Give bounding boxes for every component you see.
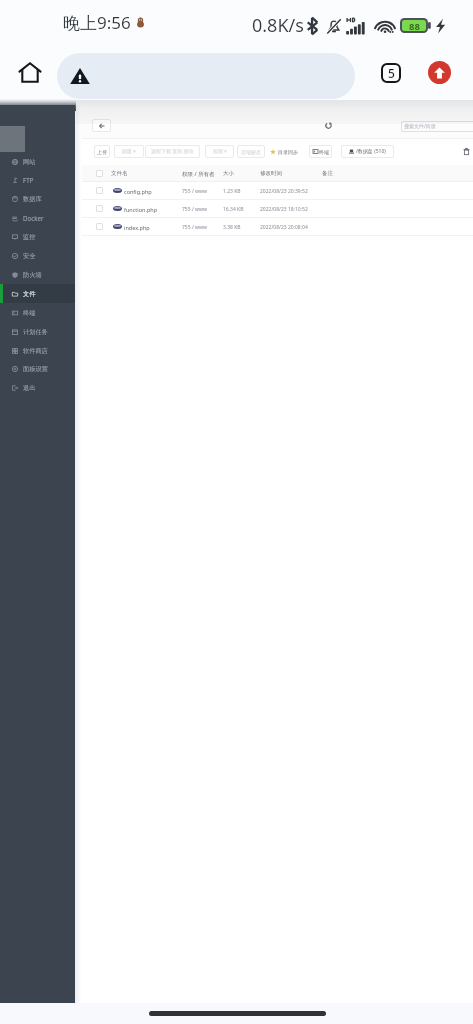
button[interactable]: 终端 [0, 303, 75, 322]
button[interactable]: 远程下载 复制 移动 [145, 145, 200, 158]
button[interactable]: Scroll to top [428, 61, 451, 84]
staticText: 权限 ▾ [213, 148, 227, 155]
staticText: 2022/08/23 20:39:52 [260, 188, 308, 195]
button[interactable]: 面板设置 [0, 359, 75, 378]
staticText: 5 [388, 65, 395, 81]
button[interactable]: 权限 ▾ [205, 145, 234, 158]
button[interactable]: 计划任务 [0, 322, 75, 341]
button[interactable]: index.php [0, 218, 473, 235]
staticText: 网站 [23, 158, 36, 166]
staticText: 上传 [97, 149, 107, 155]
staticText: 终端 [319, 149, 329, 155]
staticText: 目录同步 [278, 149, 298, 155]
button[interactable]: 上传 [94, 145, 110, 158]
staticText: 权限 / 所有者 [182, 170, 215, 178]
staticText: 面板设置 [23, 365, 48, 373]
button[interactable] [57, 53, 355, 99]
staticText: 安全 [23, 252, 36, 260]
staticText: 1.23 KB [223, 188, 241, 195]
button[interactable]: 监控 [0, 227, 75, 246]
button[interactable]: Back [92, 119, 111, 132]
button[interactable]: config.php [0, 182, 473, 199]
staticText: Docker [23, 214, 44, 222]
staticText: 755 / www [182, 224, 207, 231]
button[interactable]: Delete [463, 148, 470, 155]
button[interactable]: /数据盘 (510) [341, 145, 394, 158]
staticText: 文件 [23, 290, 36, 298]
staticText: 2022/08/23 18:10:52 [260, 206, 308, 213]
staticText: 755 / www [182, 206, 207, 213]
button[interactable]: function.php [0, 200, 473, 217]
staticText: 755 / www [182, 188, 207, 195]
staticText: 软件商店 [23, 347, 48, 355]
button[interactable]: Docker [0, 208, 75, 227]
staticText: 88 [409, 20, 420, 31]
staticText: 计划任务 [23, 328, 48, 336]
button[interactable]: Refresh [320, 119, 337, 132]
staticText: /数据盘 (510) [356, 148, 386, 155]
staticText: 0.8K/s [252, 13, 304, 38]
button[interactable]: Home [14, 56, 46, 88]
button[interactable]: 新建 ▾ [114, 145, 144, 158]
staticText: 压缩解压 [241, 149, 261, 155]
staticText: 搜索文件/目录 [404, 123, 436, 130]
staticText: 远程下载 复制 移动 [151, 148, 194, 155]
button[interactable]: 目录同步 [270, 145, 298, 158]
button[interactable]: 搜索文件/目录 [401, 121, 473, 132]
staticText: index.php [124, 224, 150, 231]
staticText: 文件名 [111, 170, 128, 177]
button[interactable]: 数据库 [0, 189, 75, 208]
staticText: 16.34 KB [223, 206, 244, 213]
button[interactable]: 网站 [0, 152, 75, 171]
staticText: 退出 [23, 384, 36, 392]
button[interactable]: 终端 [309, 145, 332, 158]
button[interactable]: 压缩解压 [237, 145, 265, 158]
staticText: 大小 [223, 170, 234, 177]
staticText: FTP [23, 176, 34, 184]
button[interactable]: 退出 [0, 378, 75, 397]
button[interactable]: 防火墙 [0, 265, 75, 284]
staticText: 监控 [23, 233, 36, 241]
button[interactable]: 安全 [0, 246, 75, 265]
staticText: config.php [124, 188, 152, 195]
staticText: function.php [124, 206, 158, 213]
staticText: 新建 ▾ [122, 148, 136, 155]
staticText: 晚上9:56 [63, 11, 131, 34]
staticText: 数据库 [23, 195, 42, 203]
staticText: 3.38 KB [223, 224, 241, 231]
staticText: 防火墙 [23, 271, 42, 279]
staticText: 备注 [322, 170, 333, 177]
button[interactable]: Tabs [381, 63, 401, 83]
button[interactable]: 文件 [0, 284, 75, 303]
button[interactable]: 软件商店 [0, 341, 75, 360]
staticText: 修改时间 [260, 170, 282, 177]
button[interactable]: FTP [0, 170, 75, 189]
staticText: 终端 [23, 309, 36, 317]
staticText: 2022/08/23 20:08:04 [260, 224, 308, 231]
